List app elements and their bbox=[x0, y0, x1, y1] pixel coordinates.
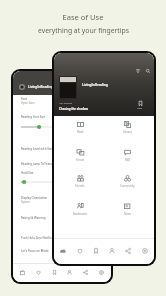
button[interactable]: Let's Focus on Mode bbox=[13, 249, 111, 255]
staticText: System bbox=[21, 200, 31, 204]
staticText: FAQ bbox=[125, 158, 131, 162]
staticText: Rating Id Warning bbox=[21, 216, 46, 220]
button[interactable]: Bookmarks bbox=[48, 266, 61, 279]
staticText: Ease of Use bbox=[62, 12, 104, 22]
button[interactable]: LivingInReading bbox=[13, 71, 111, 95]
staticText: Hold Size bbox=[21, 171, 34, 175]
button[interactable]: Profile bbox=[63, 266, 76, 279]
button[interactable]: Friends bbox=[64, 175, 96, 195]
staticText: Read bbox=[77, 130, 84, 134]
button[interactable]: Profile bbox=[105, 244, 119, 258]
staticText: Reading Level with Voice bbox=[21, 147, 55, 151]
button[interactable]: Font bbox=[13, 97, 111, 103]
button[interactable]: Hold Size bbox=[13, 171, 111, 177]
button[interactable]: Filter bbox=[134, 67, 142, 75]
button[interactable]: Search bbox=[144, 67, 152, 75]
staticText: Let's Focus on Mode bbox=[21, 249, 49, 253]
staticText: Forum bbox=[76, 158, 85, 162]
staticText: Reading Font Size bbox=[21, 115, 46, 119]
staticText: Open Sans bbox=[21, 101, 35, 105]
staticText: Library bbox=[123, 130, 132, 134]
button[interactable]: Favourites bbox=[73, 244, 87, 258]
staticText: More bbox=[137, 107, 143, 110]
button[interactable]: Settings bbox=[138, 244, 152, 258]
staticText: Chasing the shadow bbox=[59, 107, 88, 111]
button[interactable]: Community bbox=[111, 175, 143, 195]
button[interactable]: Share bbox=[121, 244, 135, 258]
button[interactable]: Rating Id Warning bbox=[13, 216, 111, 222]
staticText: Display Orientation bbox=[21, 196, 48, 200]
staticText: Last Reading bbox=[59, 102, 73, 105]
staticText: Reading Jump To Feature bbox=[21, 162, 55, 166]
button[interactable]: Store bbox=[16, 266, 29, 279]
button[interactable]: Bookmarks bbox=[89, 244, 103, 258]
staticText: News bbox=[124, 212, 131, 216]
button[interactable]: Reading Jump To Feature bbox=[13, 162, 111, 168]
staticText: LivingInReading bbox=[28, 85, 54, 89]
button[interactable]: Read bbox=[64, 121, 96, 141]
button[interactable]: Bookmarks bbox=[64, 203, 96, 223]
button[interactable]: FAQ bbox=[111, 149, 143, 169]
staticText: Bookmarks bbox=[73, 212, 88, 216]
staticText: Community bbox=[120, 184, 135, 188]
button[interactable]: News bbox=[111, 203, 143, 223]
button[interactable]: Home bbox=[56, 244, 70, 258]
button[interactable]: Display Orientation bbox=[13, 196, 111, 202]
button[interactable]: Reading Font Size bbox=[13, 115, 111, 121]
button[interactable]: Push Hulu Zero Notification bbox=[13, 236, 111, 242]
staticText: Friends bbox=[75, 184, 85, 188]
staticText: Font bbox=[21, 97, 28, 101]
button[interactable] bbox=[21, 179, 109, 185]
button[interactable]: Share bbox=[79, 266, 92, 279]
button[interactable]: Library bbox=[111, 121, 143, 141]
button[interactable] bbox=[21, 124, 109, 130]
button[interactable]: Forum bbox=[64, 149, 96, 169]
button[interactable]: Settings bbox=[95, 266, 108, 279]
button[interactable]: Reading Level with Voice bbox=[13, 147, 111, 153]
button[interactable]: More bbox=[137, 101, 143, 110]
button[interactable]: Favourites bbox=[32, 266, 45, 279]
staticText: everything at your fingertips bbox=[38, 26, 129, 35]
staticText: Push Hulu Zero Notification bbox=[21, 236, 59, 240]
staticText: LivingInReading bbox=[82, 83, 108, 87]
